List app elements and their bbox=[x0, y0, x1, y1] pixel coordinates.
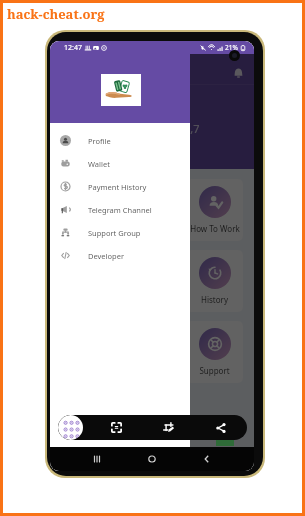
button[interactable]: Payment History bbox=[50, 175, 190, 198]
staticText: How To Work bbox=[190, 223, 240, 234]
button[interactable]: Profile bbox=[50, 129, 190, 152]
button[interactable]: Wallet bbox=[50, 152, 190, 175]
staticText: Developer bbox=[88, 251, 125, 261]
staticText: Support bbox=[199, 365, 230, 376]
staticText: 12:47 bbox=[64, 43, 82, 53]
staticText: 21% bbox=[225, 43, 238, 52]
button[interactable]: Apps bbox=[58, 415, 83, 440]
button[interactable]: Rewards bbox=[123, 179, 180, 241]
staticText: hack-cheat.org bbox=[7, 5, 105, 23]
button[interactable]: Tasks bbox=[142, 415, 194, 440]
staticText: History bbox=[201, 294, 228, 305]
staticText: Telegram Channel bbox=[88, 205, 152, 215]
button[interactable]: How To Work bbox=[186, 179, 243, 241]
staticText: Payment History bbox=[88, 182, 147, 192]
staticText: Wallet bbox=[88, 159, 110, 169]
button[interactable]: Share bbox=[194, 415, 247, 440]
button[interactable]: Leader bbox=[61, 250, 117, 312]
button[interactable]: Telegram Channel bbox=[50, 198, 190, 221]
button[interactable]: Support bbox=[186, 321, 243, 383]
staticText: 1,7 bbox=[184, 121, 200, 136]
button[interactable]: History bbox=[186, 250, 243, 312]
button[interactable]: Refer bbox=[61, 179, 117, 241]
button[interactable]: Support Group bbox=[50, 221, 190, 244]
staticText: Rewards bbox=[136, 223, 168, 234]
button[interactable]: Scan bbox=[90, 415, 142, 440]
button[interactable]: Notifications bbox=[232, 67, 245, 80]
staticText: Support Group bbox=[88, 228, 141, 238]
staticText: Profile bbox=[88, 136, 111, 146]
staticText: Refer bbox=[79, 223, 100, 234]
button[interactable]: Developer bbox=[50, 244, 190, 267]
